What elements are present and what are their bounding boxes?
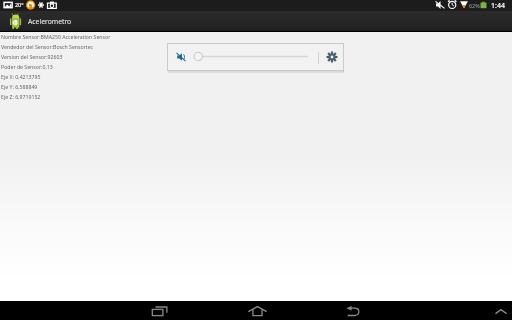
button[interactable]: Volume slider <box>190 44 309 70</box>
staticText: Eje Z: 6,9719152 <box>1 93 41 100</box>
staticText: Eje X: 0,4213795 <box>1 73 41 80</box>
staticText: Acelerometro <box>28 17 72 26</box>
button[interactable]: Home <box>243 301 271 320</box>
button[interactable]: Show notifications <box>489 301 512 320</box>
staticText: Poder de Sensor:0,13 <box>1 63 53 70</box>
button[interactable]: Settings <box>321 44 343 70</box>
staticText: 62% <box>469 2 480 9</box>
button[interactable]: Recents <box>146 301 174 320</box>
button[interactable]: Back <box>339 301 367 320</box>
staticText: Nombre Sensor:BMA250 Acceleration Sensor <box>1 33 111 40</box>
staticText: Eje Y: 6,588849 <box>1 83 38 90</box>
button[interactable]: Mute <box>172 44 189 70</box>
staticText: 1:44 <box>491 1 505 11</box>
staticText: Vendedor del Sensor:Bosch Sensortec <box>1 43 94 50</box>
staticText: Version del Sensor:92603 <box>1 53 63 60</box>
staticText: 20° <box>15 1 24 8</box>
